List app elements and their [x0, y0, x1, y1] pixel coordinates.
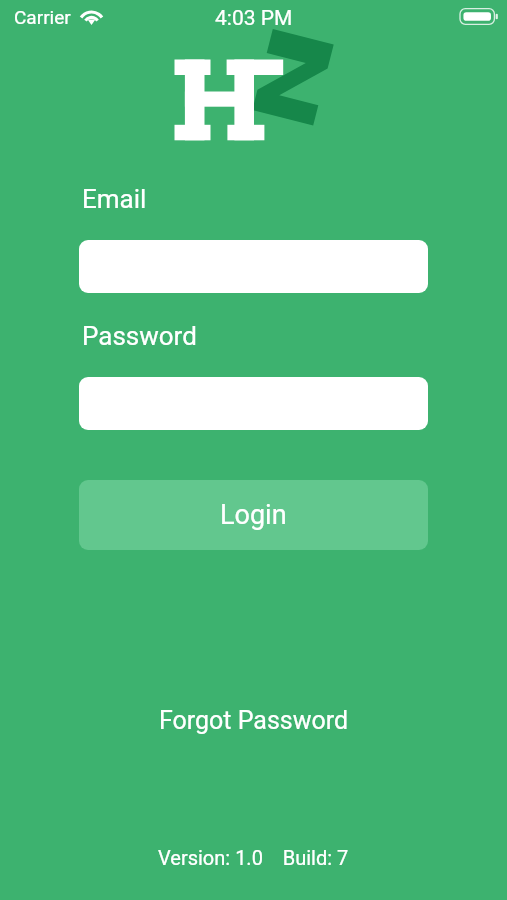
button[interactable]: Forgot Password	[143, 698, 365, 743]
staticText: Forgot Password	[159, 706, 349, 735]
staticText: Login	[220, 499, 287, 531]
staticText: Email	[82, 184, 147, 214]
button[interactable]: Password input field	[79, 377, 428, 430]
staticText: 4:03 PM	[215, 6, 293, 31]
button[interactable]: Login	[79, 480, 428, 550]
staticText: Carrier	[14, 6, 71, 28]
staticText: Password	[82, 321, 197, 351]
staticText: Version: 1.0 Build: 7	[158, 846, 349, 869]
button[interactable]: Email input field	[79, 240, 428, 293]
